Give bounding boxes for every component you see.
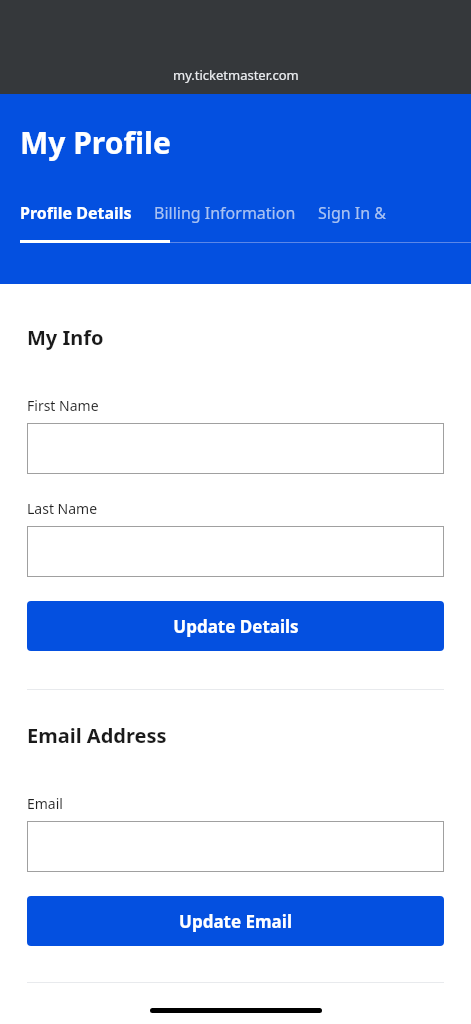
staticText: My Profile	[20, 122, 171, 163]
staticText: My Info	[27, 324, 104, 351]
staticText: First Name	[27, 396, 99, 415]
staticText: Update Details	[173, 615, 299, 638]
staticText: Sign In &	[318, 202, 386, 224]
button[interactable]: Address bar	[0, 0, 471, 94]
button[interactable]: Profile Details	[20, 202, 132, 228]
staticText: Billing Information	[154, 202, 296, 224]
staticText: Profile Details	[20, 202, 132, 224]
staticText: Email	[27, 794, 63, 813]
button[interactable]: Sign In &	[318, 202, 386, 228]
staticText: Last Name	[27, 499, 98, 518]
staticText: Update Email	[179, 910, 292, 933]
button[interactable]: Update Email	[27, 896, 444, 946]
button[interactable]	[27, 423, 444, 474]
button[interactable]: Update Details	[27, 601, 444, 651]
staticText: my.ticketmaster.com	[173, 66, 299, 84]
button[interactable]	[27, 526, 444, 577]
staticText: Email Address	[27, 722, 167, 749]
button[interactable]	[27, 821, 444, 872]
button[interactable]: Billing Information	[154, 202, 296, 228]
